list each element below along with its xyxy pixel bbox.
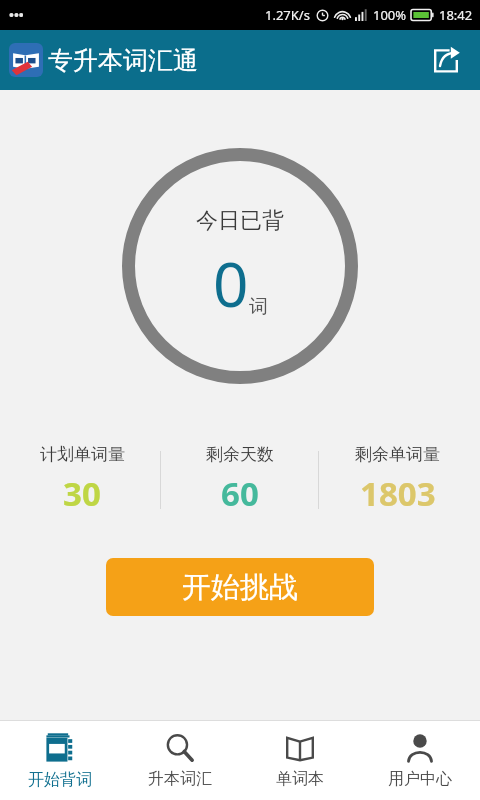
staticText: 0 <box>213 241 249 325</box>
button[interactable]: 开始背词 <box>0 721 120 800</box>
staticText: ••• <box>9 6 24 24</box>
staticText: 专升本词汇通 <box>48 45 198 76</box>
button[interactable]: 升本词汇 <box>120 721 240 800</box>
staticText: 升本词汇 <box>148 769 212 789</box>
staticText: 30 <box>63 471 101 516</box>
staticText: 开始背词 <box>28 770 92 790</box>
button[interactable]: 开始挑战 <box>106 558 374 616</box>
button[interactable]: 剩余天数 <box>161 444 318 516</box>
staticText: 1.27K/s <box>265 6 310 24</box>
staticText: 计划单词量 <box>40 444 125 465</box>
staticText: 剩余天数 <box>206 444 274 465</box>
staticText: 单词本 <box>276 769 324 789</box>
staticText: 60 <box>221 471 259 516</box>
staticText: 1803 <box>360 471 436 516</box>
button[interactable]: 用户中心 <box>360 721 480 800</box>
staticText: 开始挑战 <box>182 569 298 606</box>
button[interactable]: Share <box>424 38 468 82</box>
button[interactable]: 单词本 <box>240 721 360 800</box>
staticText: 今日已背 <box>196 207 284 235</box>
button[interactable]: 剩余单词量 <box>319 444 476 516</box>
staticText: 18:42 <box>439 6 473 24</box>
staticText: 词 <box>249 295 268 319</box>
button[interactable]: 计划单词量 <box>4 444 160 516</box>
staticText: 100% <box>373 6 407 24</box>
staticText: 剩余单词量 <box>355 444 440 465</box>
staticText: 用户中心 <box>388 769 452 789</box>
